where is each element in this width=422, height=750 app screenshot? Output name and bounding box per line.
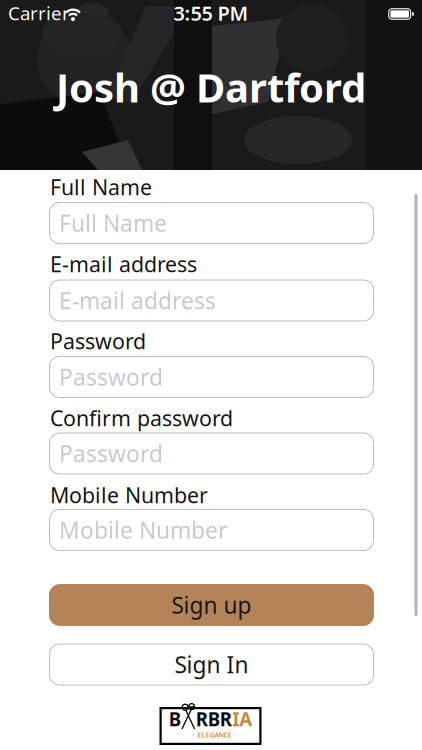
staticText: Full Name bbox=[50, 173, 152, 201]
button[interactable]: Password bbox=[49, 356, 374, 398]
staticText: Josh @ Dartford bbox=[56, 60, 366, 113]
staticText: ELEGANCE bbox=[197, 731, 231, 739]
staticText: Mobile Number bbox=[59, 515, 227, 545]
staticText: Mobile Number bbox=[50, 481, 208, 509]
staticText: RBR bbox=[196, 707, 232, 731]
staticText: Password bbox=[59, 438, 163, 468]
staticText: B bbox=[169, 707, 181, 731]
button[interactable]: Sign In bbox=[49, 643, 374, 685]
staticText: Confirm password bbox=[50, 404, 233, 432]
button[interactable]: Sign up bbox=[49, 584, 374, 626]
button[interactable]: Password bbox=[49, 432, 374, 474]
staticText: Password bbox=[59, 362, 163, 392]
staticText: 3:55 PM bbox=[173, 0, 248, 26]
staticText: IA bbox=[232, 707, 252, 731]
button[interactable]: Mobile Number bbox=[49, 509, 374, 551]
staticText: Full Name bbox=[59, 208, 167, 238]
staticText: E-mail address bbox=[59, 285, 216, 315]
staticText: Carrier bbox=[8, 1, 70, 25]
staticText: E-mail address bbox=[50, 250, 197, 278]
button[interactable]: Full Name bbox=[49, 202, 374, 244]
button[interactable]: E-mail address bbox=[49, 279, 374, 321]
staticText: Sign up bbox=[171, 590, 251, 620]
staticText: Password bbox=[50, 327, 146, 355]
staticText: Sign In bbox=[174, 649, 248, 679]
